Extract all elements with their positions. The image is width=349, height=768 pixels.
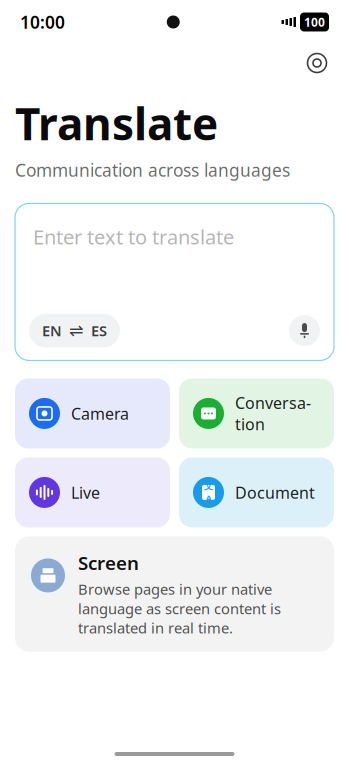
staticText: ES [91,321,107,340]
button[interactable]: Screen [15,536,334,652]
button[interactable]: Settings [300,46,334,80]
staticText: ⇌ [69,321,84,340]
button[interactable]: EN [29,314,120,347]
button[interactable]: Live [15,457,170,527]
staticText: Conversation [235,392,311,435]
staticText: Screen [78,550,139,575]
staticText: 100 [304,14,325,30]
staticText: 文 [204,480,213,492]
staticText: Document [235,482,315,503]
staticText: Camera [71,403,129,424]
button[interactable]: 文 [179,457,334,527]
staticText: Enter text to translate [33,223,234,250]
button[interactable]: Voice input [289,315,320,346]
staticText: Browse pages in your native language as … [78,579,281,638]
staticText: Communication across languages [15,158,290,181]
staticText: EN [42,321,62,340]
staticText: Translate [15,94,218,152]
staticText: Live [71,482,100,503]
button[interactable]: Conversation [179,378,334,448]
staticText: A [205,492,211,504]
button[interactable]: Camera [15,378,170,448]
staticText: 10:00 [20,10,65,33]
